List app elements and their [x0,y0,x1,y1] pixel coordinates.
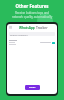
staticText: Other Features [15,3,49,9]
staticText: Search contacts [10,33,28,36]
staticText: WhatsApp [19,26,35,30]
button[interactable]: Toggle network quality [7,39,57,46]
button[interactable]: Toggle network quality [52,42,55,44]
other: Menu [9,26,12,29]
button[interactable]: START [25,85,40,90]
staticText: Tracker [36,26,48,30]
button[interactable]: Search contacts [9,32,55,36]
staticText: START [29,86,36,89]
staticText: Receive buttons taps and network quality… [3,11,61,19]
button[interactable]: Menu [7,24,57,31]
